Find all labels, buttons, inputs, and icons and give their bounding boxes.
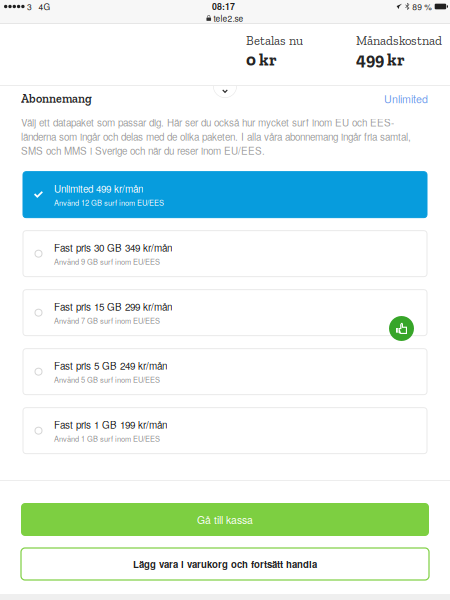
staticText: Fast pris 5 GB 249 kr/mån <box>54 358 167 373</box>
staticText: Fast pris 1 GB 199 kr/mån <box>54 417 167 432</box>
staticText: 4G <box>39 0 51 13</box>
button[interactable]: Gå till kassa <box>21 503 429 536</box>
staticText: Abonnemang <box>21 91 92 106</box>
button[interactable]: Unlimited <box>384 91 428 106</box>
staticText: 89 % <box>412 0 432 13</box>
staticText: Lägg vara i varukorg och fortsätt handla <box>133 557 317 571</box>
button[interactable]: Fast pris 1 GB 199 kr/mån <box>23 408 427 454</box>
staticText: Använd 12 GB surf inom EU/EES <box>54 197 164 208</box>
staticText: 0 kr <box>246 49 277 70</box>
staticText: Fast pris 30 GB 349 kr/mån <box>54 240 172 255</box>
staticText: tele2.se <box>213 12 243 24</box>
staticText: Fast pris 15 GB 299 kr/mån <box>54 299 172 314</box>
staticText: Använd 5 GB surf inom EU/EES <box>54 374 160 385</box>
staticText: Unlimited 499 kr/mån <box>54 181 143 196</box>
button[interactable]: Unlimited 499 kr/mån <box>23 172 427 218</box>
staticText: Unlimited <box>384 91 428 106</box>
button[interactable]: Fast pris 5 GB 249 kr/mån <box>23 349 427 395</box>
button[interactable]: Expand price summary <box>213 86 237 99</box>
button[interactable]: Give feedback <box>389 316 414 341</box>
button[interactable]: Lägg vara i varukorg och fortsätt handla <box>21 548 429 580</box>
staticText: 3 <box>27 0 32 13</box>
staticText: Välj ett datapaket som passar dig. Här s… <box>21 115 411 158</box>
staticText: Använd 7 GB surf inom EU/EES <box>54 315 160 326</box>
staticText: Gå till kassa <box>197 512 253 527</box>
staticText: Använd 1 GB surf inom EU/EES <box>54 433 160 444</box>
staticText: 08:17 <box>212 0 235 13</box>
staticText: Betalas nu <box>246 33 303 48</box>
button[interactable]: Fast pris 15 GB 299 kr/mån <box>23 290 427 336</box>
staticText: 499 kr <box>356 49 405 70</box>
button[interactable]: Fast pris 30 GB 349 kr/mån <box>23 231 427 277</box>
staticText: Månadskostnad <box>356 33 442 48</box>
staticText: Använd 9 GB surf inom EU/EES <box>54 256 160 267</box>
